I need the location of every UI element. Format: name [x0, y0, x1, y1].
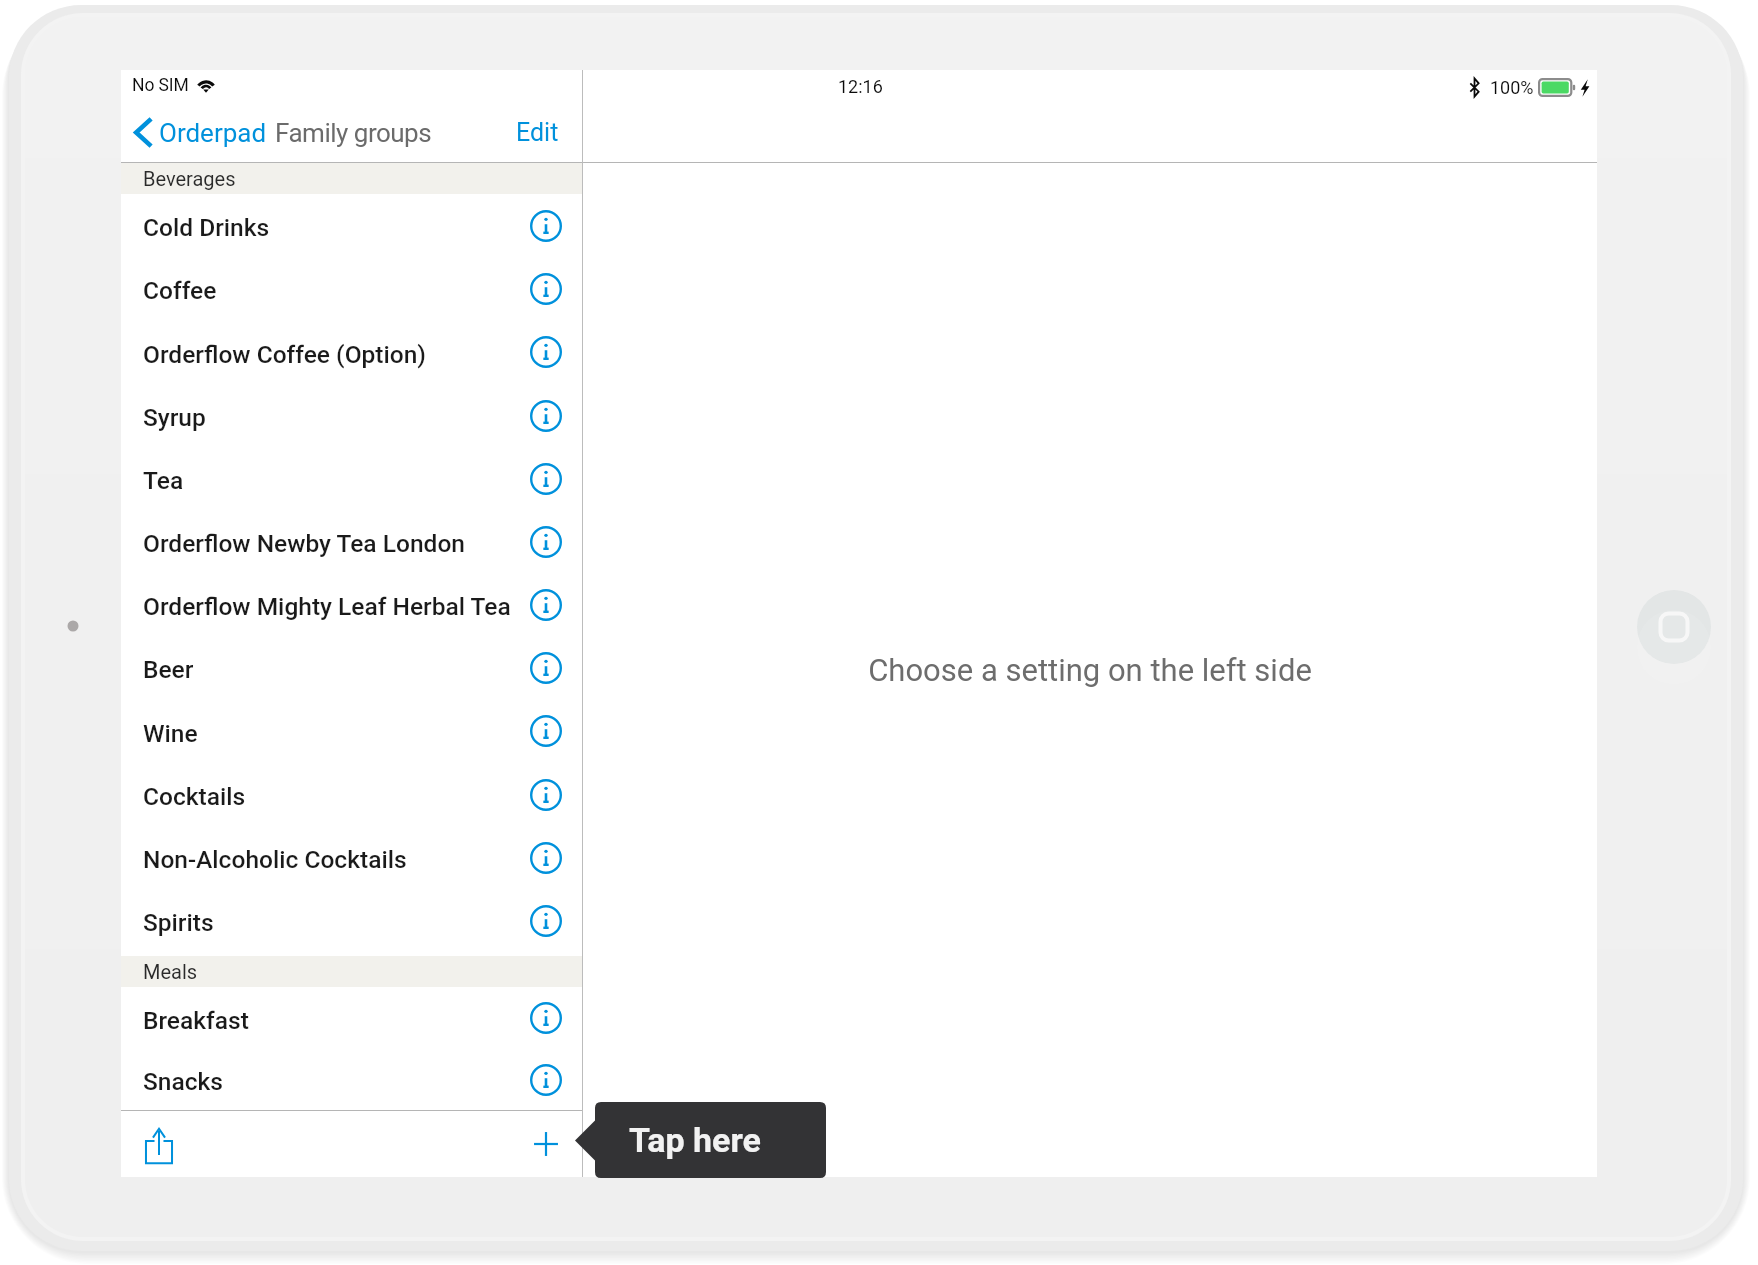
staticText: Orderflow Newby Tea London [143, 529, 465, 558]
staticText: Snacks [143, 1067, 223, 1096]
button[interactable]: Info [530, 526, 562, 558]
button[interactable]: Wine [121, 699, 582, 763]
button[interactable]: Snacks [121, 1049, 582, 1110]
button[interactable]: Syrup [121, 384, 582, 447]
staticText: Meals [143, 960, 198, 983]
staticText: Choose a setting on the left side [868, 652, 1312, 688]
button[interactable]: Edit [506, 110, 569, 155]
button[interactable]: Orderflow Mighty Leaf Herbal Tea [121, 573, 582, 636]
staticText: Non-Alcoholic Cocktails [143, 845, 407, 874]
staticText: Family groups [275, 118, 432, 148]
button[interactable]: Info [530, 905, 562, 937]
button[interactable]: Info [530, 715, 562, 747]
staticText: Orderpad [159, 118, 267, 148]
button[interactable]: Orderflow Newby Tea London [121, 510, 582, 573]
button[interactable]: Share [131, 1111, 187, 1177]
staticText: Spirits [143, 908, 214, 937]
staticText: Cold Drinks [143, 213, 270, 242]
button[interactable]: Cocktails [121, 763, 582, 826]
staticText: Beer [143, 655, 194, 684]
button[interactable]: Info [530, 842, 562, 874]
button[interactable]: Spirits [121, 889, 582, 952]
staticText: 12:16 [838, 76, 883, 97]
staticText: Syrup [143, 403, 206, 432]
button[interactable]: Info [530, 336, 562, 368]
button[interactable]: Info [530, 652, 562, 684]
button[interactable]: Coffee [121, 257, 582, 320]
button[interactable]: Info [530, 1002, 562, 1034]
button[interactable]: Info [530, 589, 562, 621]
staticText: Edit [516, 118, 559, 147]
button[interactable]: Info [530, 210, 562, 242]
button[interactable]: Info [530, 779, 562, 811]
staticText: Wine [143, 719, 198, 748]
staticText: Orderflow Coffee (Option) [143, 340, 427, 369]
button[interactable]: Info [530, 400, 562, 432]
staticText: Cocktails [143, 782, 246, 811]
button[interactable]: Breakfast [121, 987, 582, 1049]
button[interactable]: Info [530, 1064, 562, 1096]
staticText: Tea [143, 466, 184, 495]
button[interactable]: Tea [121, 447, 582, 510]
button[interactable]: Orderflow Coffee (Option) [121, 320, 582, 384]
staticText: Tap here [629, 1120, 761, 1160]
button[interactable]: Orderpad [134, 117, 267, 148]
button[interactable]: Info [530, 273, 562, 305]
button[interactable]: Non-Alcoholic Cocktails [121, 826, 582, 889]
staticText: 100% [1490, 77, 1534, 98]
button[interactable]: Info [530, 463, 562, 495]
staticText: Coffee [143, 276, 217, 305]
staticText: Breakfast [143, 1006, 249, 1035]
button[interactable]: Add [516, 1111, 576, 1177]
button[interactable]: Cold Drinks [121, 194, 582, 257]
staticText: Orderflow Mighty Leaf Herbal Tea [143, 592, 511, 621]
staticText: Beverages [143, 167, 236, 190]
button[interactable]: Beer [121, 636, 582, 699]
staticText: No SIM [132, 75, 189, 96]
